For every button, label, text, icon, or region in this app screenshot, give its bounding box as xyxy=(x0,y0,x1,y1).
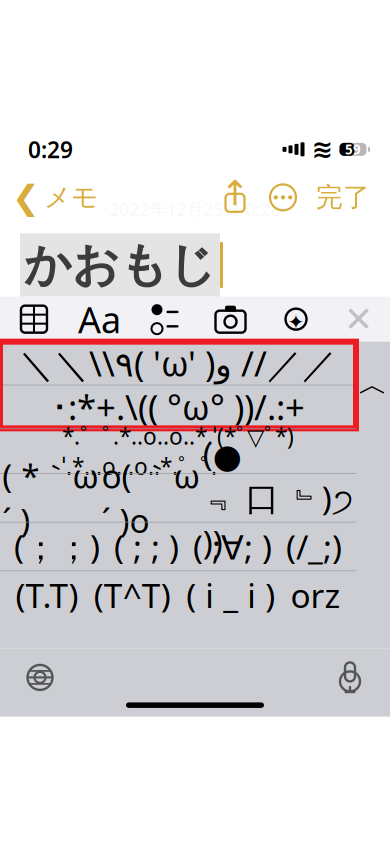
staticText: (/_;) xyxy=(286,524,342,569)
staticText: ❮ xyxy=(12,178,40,216)
staticText: *.ﾟ ﾟ.*..o..o..*.ˈ(*ﾟ▽ﾟ*)ˈ.*...o...o..*.… xyxy=(62,421,294,481)
staticText: 完了 xyxy=(316,181,370,214)
button[interactable]: ❮ xyxy=(0,172,98,222)
button[interactable]: *.ﾟ ﾟ.*..o..o..*.ˈ(*ﾟ▽ﾟ*)ˈ.*...o...o..*.… xyxy=(0,429,356,473)
button[interactable]: カメラ xyxy=(199,297,261,342)
button[interactable]: (T.T) xyxy=(15,571,78,619)
staticText: ≋ xyxy=(311,135,332,164)
staticText: (；；) xyxy=(14,524,100,569)
staticText: 0:29 xyxy=(28,134,73,164)
button[interactable]: ( i _ i ) xyxy=(186,571,275,619)
staticText: ＼＼\\٩( 'ω' )و //／／ xyxy=(19,340,337,386)
staticText: ✕ xyxy=(344,299,373,339)
staticText: Aa xyxy=(78,295,121,343)
staticText: ･:*+.\(( °ω° ))/.:+ xyxy=(51,384,305,430)
staticText: ↑ xyxy=(220,174,249,213)
button[interactable]: ＼＼\\٩( 'ω' )و //／／ xyxy=(0,342,356,385)
button[interactable]: マークアップ xyxy=(265,297,327,342)
staticText: ( *｀ω´ ) xyxy=(2,453,99,542)
button[interactable]: 次のキーボード xyxy=(10,654,70,700)
staticText: ✦ xyxy=(287,311,304,333)
button[interactable]: 書式 xyxy=(68,297,130,342)
staticText: ( i _ i ) xyxy=(186,573,275,617)
staticText: かおもじ xyxy=(24,236,216,294)
staticText: 59 xyxy=(345,140,361,158)
button[interactable]: (/_;) xyxy=(286,522,342,570)
staticText: ( ; ; ) xyxy=(114,524,179,569)
button[interactable]: その他 xyxy=(258,182,308,212)
button[interactable]: (；；) xyxy=(14,522,100,570)
staticText: (T^T) xyxy=(94,573,171,617)
button[interactable]: 表 xyxy=(3,297,65,342)
button[interactable]: チェックリスト xyxy=(134,297,196,342)
button[interactable]: 候補を閉じる xyxy=(356,342,390,428)
staticText: ( ;∀; ) xyxy=(193,524,272,569)
staticText: ︿ xyxy=(358,367,387,403)
button[interactable]: 完了 xyxy=(308,175,378,220)
button[interactable]: (T^T) xyxy=(94,571,171,619)
staticText: (● ﹃ 口 ﹄)੭)) xyxy=(203,431,354,564)
button[interactable]: o( ｀ω´ )o xyxy=(101,474,200,522)
button[interactable]: キーボードを閉じる xyxy=(330,297,386,342)
staticText: (T.T) xyxy=(15,573,78,617)
button[interactable]: ･:*+.\(( °ω° ))/.:+ xyxy=(0,385,356,428)
staticText: orz xyxy=(291,573,341,617)
button[interactable]: 共有 xyxy=(212,180,258,214)
button[interactable]: 音声入力 xyxy=(320,654,380,700)
button[interactable]: ( ; ; ) xyxy=(114,522,179,570)
button[interactable]: ( ;∀; ) xyxy=(193,522,272,570)
staticText: メモ xyxy=(44,181,98,214)
staticText: o( ｀ω´ )o xyxy=(101,453,200,542)
button[interactable]: (● ﹃ 口 ﹄)੭)) xyxy=(203,474,354,522)
staticText: 2022年12月25日 0:28 xyxy=(109,198,280,221)
button[interactable]: orz xyxy=(291,571,341,619)
button[interactable]: ( *｀ω´ ) xyxy=(2,474,99,522)
